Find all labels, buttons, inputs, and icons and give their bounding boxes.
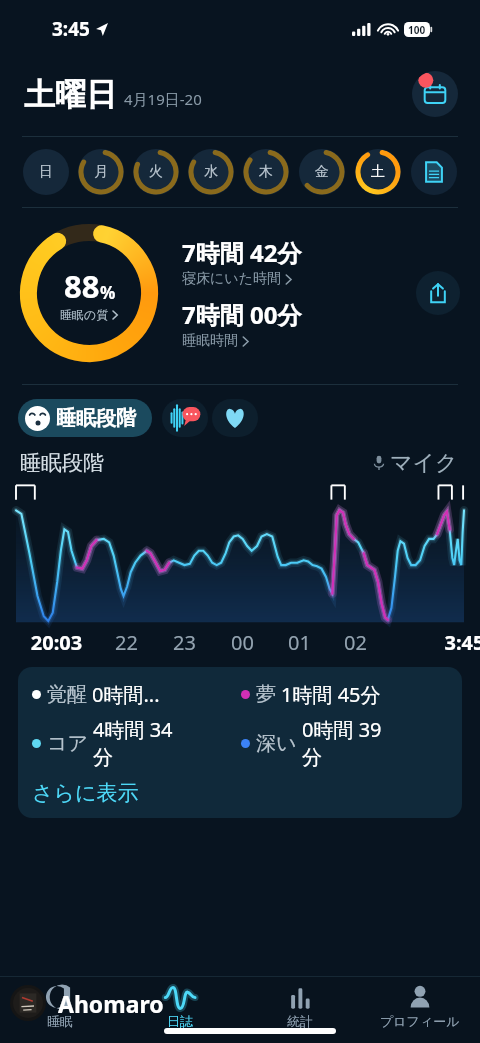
staticText: 4月19日-20	[124, 89, 202, 109]
staticText: 月	[94, 163, 108, 181]
staticText: 0時間...	[92, 681, 212, 708]
staticText: 日	[39, 163, 53, 181]
button[interactable]: 夢	[241, 681, 450, 708]
staticText: 7時間 00分	[182, 298, 302, 331]
button[interactable]: さらに表示	[32, 780, 139, 806]
button[interactable]: 深い	[241, 716, 450, 770]
staticText: 100	[408, 23, 426, 37]
button[interactable]: Heart rate	[212, 399, 258, 437]
button[interactable]: 水	[183, 144, 238, 200]
button[interactable]: Share	[416, 271, 460, 315]
staticText: 01	[259, 629, 340, 656]
staticText: 統計	[287, 1013, 313, 1029]
staticText: 88	[64, 265, 100, 307]
staticText: コア	[47, 731, 88, 756]
staticText: 23	[144, 629, 225, 656]
staticText: 0時間 39 分	[302, 716, 402, 770]
button[interactable]: 睡眠段階	[18, 399, 152, 437]
staticText: 1時間 45分	[281, 681, 401, 708]
button[interactable]: 7時間 42分	[182, 236, 302, 288]
button[interactable]: プロフィール	[360, 977, 480, 1029]
staticText: 7時間 42分	[182, 236, 302, 269]
button[interactable]: Calendar	[412, 71, 458, 117]
button[interactable]: 日誌	[120, 977, 240, 1029]
button[interactable]: 統計	[240, 977, 360, 1029]
staticText: 夢	[256, 682, 276, 707]
staticText: 覚醒	[47, 682, 87, 707]
staticText: プロフィール	[380, 1013, 460, 1029]
staticText: 火	[149, 163, 163, 181]
button[interactable]: 睡眠	[0, 977, 120, 1029]
staticText: 20:03	[16, 629, 97, 656]
staticText: 睡眠の質	[60, 307, 109, 322]
staticText: 寝床にいた時間	[182, 270, 281, 288]
button[interactable]: マイク	[373, 449, 458, 477]
staticText: 金	[315, 163, 329, 181]
staticText: マイク	[390, 449, 458, 477]
staticText: 3:45	[424, 629, 480, 656]
staticText: 睡眠段階	[20, 450, 104, 476]
button[interactable]: コア	[32, 716, 241, 770]
button[interactable]: 日	[18, 144, 73, 200]
staticText: 睡眠時間	[182, 332, 238, 350]
staticText: 水	[204, 163, 218, 181]
button[interactable]: Audio notes	[162, 399, 208, 437]
button[interactable]: Document	[406, 144, 462, 200]
staticText: 22	[86, 629, 167, 656]
staticText: 土	[371, 163, 385, 181]
staticText: 土曜日	[24, 75, 117, 114]
button[interactable]: 木	[238, 144, 294, 200]
staticText: 日誌	[167, 1013, 193, 1029]
staticText: 00	[202, 629, 283, 656]
staticText: Ahomaro	[58, 988, 164, 1019]
staticText: 木	[259, 163, 273, 181]
staticText: %	[100, 281, 116, 304]
button[interactable]: 88	[18, 222, 160, 364]
button[interactable]: 月	[73, 144, 128, 200]
button[interactable]: 土	[350, 144, 406, 200]
staticText: 睡眠	[47, 1013, 73, 1029]
staticText: 02	[315, 629, 396, 656]
button[interactable]: 7時間 00分	[182, 298, 302, 350]
button[interactable]: 火	[128, 144, 183, 200]
button[interactable]: 金	[294, 144, 350, 200]
staticText: 睡眠段階	[56, 406, 136, 431]
button[interactable]: 覚醒	[32, 681, 241, 708]
staticText: 深い	[256, 731, 297, 756]
staticText: 3:45	[52, 16, 90, 42]
staticText: 4時間 34 分	[93, 716, 193, 770]
